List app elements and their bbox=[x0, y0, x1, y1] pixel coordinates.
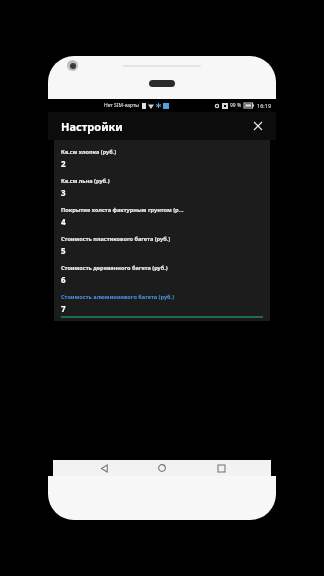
button[interactable]: Покрытие холста фактурным грунтом (р… bbox=[54, 206, 270, 235]
button[interactable]: Back bbox=[96, 460, 112, 476]
staticText: 6 bbox=[61, 274, 66, 285]
staticText: 2 bbox=[61, 158, 66, 169]
staticText: Кв.см льна (руб.) bbox=[61, 177, 110, 185]
staticText: Стоимость пластикового багета (руб.) bbox=[61, 235, 171, 243]
button[interactable]: Recent apps bbox=[213, 460, 229, 476]
button[interactable]: Стоимость деревянного багета (руб.) bbox=[54, 264, 270, 293]
staticText: Покрытие холста фактурным грунтом (р… bbox=[61, 206, 184, 214]
button[interactable]: Кв.см льна (руб.) bbox=[54, 177, 270, 206]
staticText: Нет SIM-карты bbox=[104, 102, 140, 109]
staticText: Стоимость алюминиевого багета (руб.) bbox=[61, 293, 175, 301]
button[interactable]: Close bbox=[250, 118, 266, 134]
staticText: Стоимость деревянного багета (руб.) bbox=[61, 264, 168, 272]
staticText: 3 bbox=[61, 187, 66, 198]
staticText: 99 % bbox=[230, 102, 242, 109]
staticText: 5 bbox=[61, 245, 66, 256]
staticText: Кв.см хлопка (руб.) bbox=[61, 148, 117, 156]
staticText: 7 bbox=[61, 303, 66, 314]
button[interactable]: Стоимость алюминиевого багета (руб.) bbox=[54, 293, 270, 318]
staticText: 16:19 bbox=[257, 102, 272, 109]
button[interactable]: Кв.см хлопка (руб.) bbox=[54, 148, 270, 177]
staticText: Настройки bbox=[61, 119, 123, 134]
button[interactable]: Стоимость пластикового багета (руб.) bbox=[54, 235, 270, 264]
staticText: 4 bbox=[61, 216, 66, 227]
button[interactable]: Home bbox=[154, 460, 170, 476]
